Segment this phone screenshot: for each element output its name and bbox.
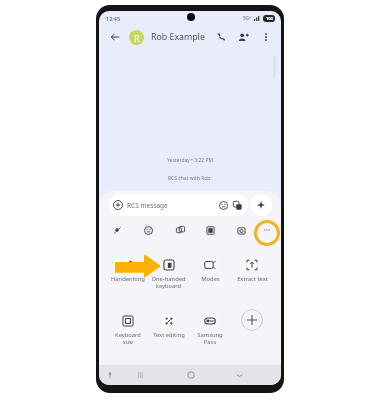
staticText: R [134, 32, 140, 44]
button[interactable]: Extract text [231, 258, 273, 283]
staticText: 100 [266, 16, 273, 21]
staticText: Modes [201, 275, 220, 283]
staticText: RCS message [127, 201, 168, 210]
button[interactable]: Back [233, 369, 245, 381]
button[interactable]: One-handed keyboard [148, 258, 189, 290]
staticText: Keyboard size [115, 331, 141, 346]
button[interactable]: Add person [235, 29, 251, 45]
button[interactable]: Keyboard size [107, 314, 148, 346]
button[interactable]: Modes [189, 258, 231, 283]
button[interactable]: Back [107, 29, 123, 45]
button[interactable]: Handwriting [107, 258, 148, 283]
staticText: Text editing [153, 331, 185, 339]
button[interactable]: Clipboard [171, 221, 189, 239]
button[interactable]: Hide keyboard [104, 369, 116, 381]
button[interactable]: Settings [232, 221, 250, 239]
staticText: 12:45 [106, 15, 121, 22]
button[interactable]: Voice typing [108, 221, 126, 239]
staticText: Handwriting [111, 275, 145, 283]
staticText: One-handed keyboard [151, 275, 186, 290]
button[interactable]: Recents [134, 369, 146, 381]
button[interactable]: RCS message [109, 194, 248, 216]
staticText: Rob Example [151, 31, 205, 43]
staticText: 5G+ [243, 15, 252, 21]
button[interactable]: Voice input [250, 194, 272, 216]
button[interactable]: Text editing [148, 314, 189, 339]
button[interactable]: Emoji [139, 221, 157, 239]
button[interactable]: More options [259, 30, 273, 44]
button[interactable]: Split keyboard [201, 221, 219, 239]
staticText: Extract text [237, 275, 268, 283]
staticText: Yesterday • 3:22 PM [167, 157, 214, 164]
button[interactable]: Add shortcut [241, 309, 263, 331]
button[interactable]: Call [213, 29, 229, 45]
button[interactable]: More keyboard options [258, 221, 276, 239]
button[interactable]: Samsung Pass [189, 314, 231, 346]
staticText: RCS chat with Rob. [168, 175, 212, 182]
staticText: Samsung Pass [197, 331, 223, 346]
button[interactable]: Home [185, 369, 197, 381]
